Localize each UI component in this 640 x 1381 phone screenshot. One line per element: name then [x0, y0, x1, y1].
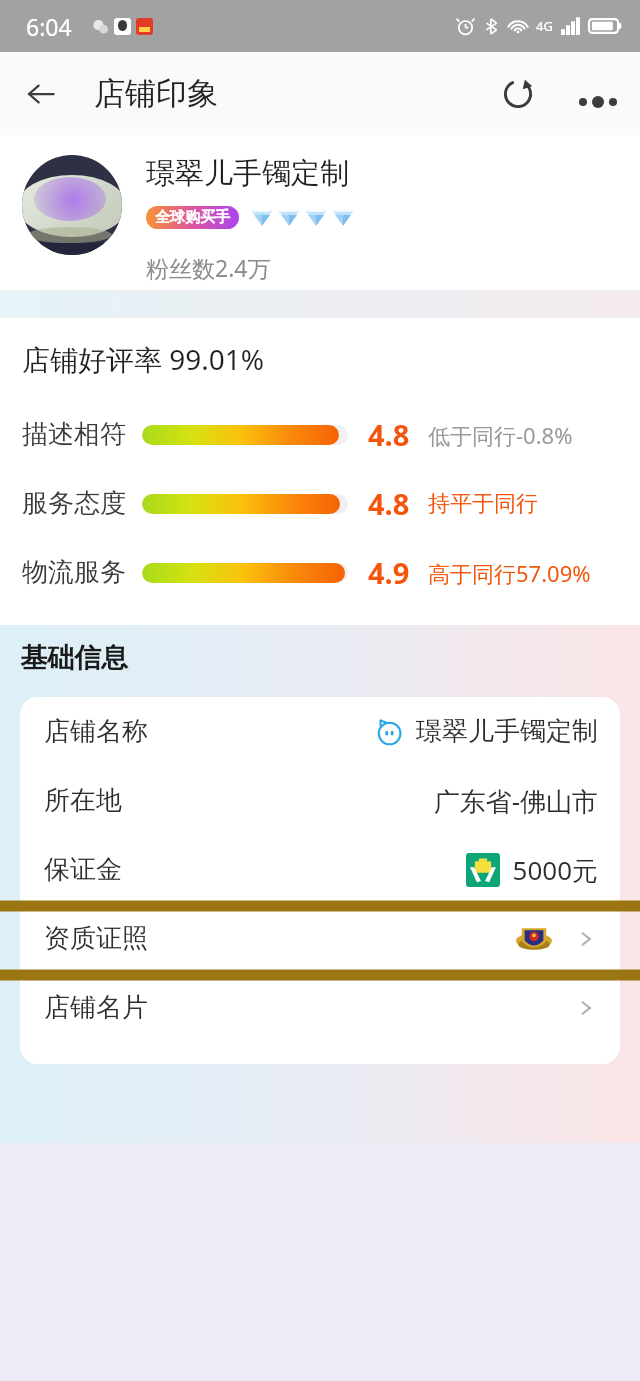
staticText: 保证金 — [44, 853, 122, 886]
staticText: 4.8 — [368, 415, 410, 454]
staticText: 服务态度 — [22, 487, 126, 520]
staticText: 描述相符 — [22, 418, 126, 451]
button[interactable]: 店铺名称 — [20, 697, 620, 766]
staticText: 粉丝数2.4万 — [146, 252, 271, 283]
staticText: 店铺名片 — [44, 991, 148, 1024]
staticText: 所在地 — [44, 784, 122, 817]
staticText: 持平于同行 — [428, 490, 538, 518]
button[interactable]: 描述相符 — [0, 400, 640, 469]
button[interactable]: 资质证照 — [20, 904, 620, 973]
staticText: 6:04 — [26, 11, 72, 42]
button[interactable]: 物流服务 — [0, 538, 640, 607]
staticText: 全球购买手 — [155, 208, 230, 227]
button[interactable]: Shop avatar — [22, 155, 122, 255]
button[interactable]: 店铺名片 — [20, 973, 620, 1042]
staticText: 璟翠儿手镯定制 — [146, 155, 349, 192]
button[interactable]: 保证金 — [20, 835, 620, 904]
staticText: 5000元 — [512, 852, 598, 888]
staticText: 4.8 — [368, 484, 410, 523]
button[interactable]: Refresh — [490, 66, 546, 122]
staticText: 基础信息 — [20, 641, 128, 675]
staticText: 低于同行-0.8% — [428, 420, 573, 450]
staticText: 4.9 — [368, 553, 410, 592]
staticText: 物流服务 — [22, 556, 126, 589]
staticText: 店铺名称 — [44, 715, 148, 748]
button[interactable]: 服务态度 — [0, 469, 640, 538]
staticText: 4G — [536, 17, 553, 35]
button[interactable]: 所在地 — [20, 766, 620, 835]
staticText: 广东省-佛山市 — [433, 783, 598, 819]
staticText: 资质证照 — [44, 922, 148, 955]
staticText: 高于同行57.09% — [428, 558, 591, 588]
staticText: 璟翠儿手镯定制 — [416, 715, 598, 748]
staticText: 店铺印象 — [94, 74, 218, 113]
button[interactable]: Back — [14, 67, 68, 121]
button[interactable]: More options — [568, 64, 628, 124]
staticText: 店铺好评率 99.01% — [22, 340, 265, 378]
